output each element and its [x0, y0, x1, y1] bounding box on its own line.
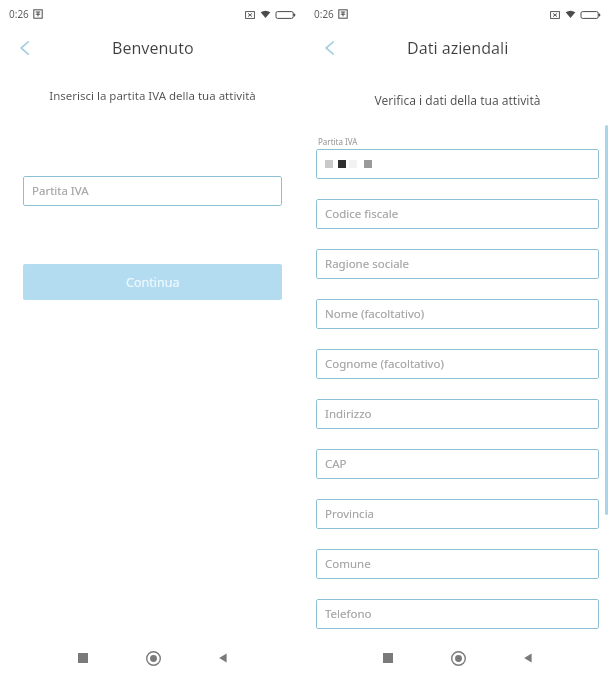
staticText: 0:26 [9, 7, 29, 21]
button[interactable]: Back [311, 29, 349, 67]
button[interactable]: Nome (facoltativo) [316, 299, 599, 329]
button[interactable]: Cognome (facoltativo) [316, 349, 599, 379]
button[interactable]: Recents [48, 638, 118, 678]
staticText: Ragione sociale [325, 256, 410, 272]
staticText: Inserisci la partita IVA della tua attiv… [14, 88, 291, 104]
staticText: Verifica i dati della tua attività [319, 92, 596, 108]
button[interactable]: Partita IVA [23, 176, 282, 206]
button[interactable]: Home [423, 638, 493, 678]
button[interactable]: Continua [23, 264, 282, 300]
staticText: Partita IVA [32, 183, 89, 199]
button[interactable]: Recents [353, 638, 423, 678]
button[interactable]: Back [493, 638, 563, 678]
staticText: Dati aziendali [407, 37, 509, 59]
button[interactable]: Back [6, 29, 44, 67]
button[interactable]: Back [188, 638, 258, 678]
staticText: 0:26 [314, 7, 334, 21]
staticText: Cognome (facoltativo) [325, 356, 444, 372]
button[interactable]: Home [118, 638, 188, 678]
button[interactable] [316, 149, 599, 179]
staticText: Benvenuto [112, 37, 194, 59]
staticText: Telefono [325, 606, 372, 622]
staticText: Partita IVA [318, 136, 358, 147]
button[interactable]: Telefono [316, 599, 599, 629]
button[interactable]: Comune [316, 549, 599, 579]
button[interactable]: Provincia [316, 499, 599, 529]
button[interactable]: Ragione sociale [316, 249, 599, 279]
staticText: CAP [325, 456, 347, 472]
staticText: Comune [325, 556, 371, 572]
button[interactable]: Codice fiscale [316, 199, 599, 229]
button[interactable]: CAP [316, 449, 599, 479]
staticText: Indirizzo [325, 406, 372, 422]
button[interactable]: Indirizzo [316, 399, 599, 429]
staticText: Continua [126, 274, 180, 291]
staticText: Provincia [325, 506, 375, 522]
staticText: Codice fiscale [325, 206, 399, 222]
staticText: Nome (facoltativo) [325, 306, 425, 322]
